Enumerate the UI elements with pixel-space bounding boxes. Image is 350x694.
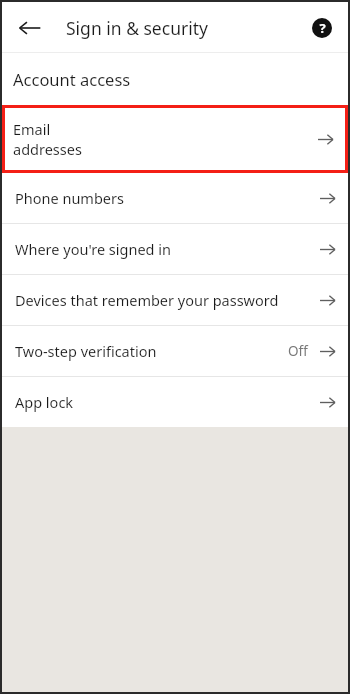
staticText: Off xyxy=(288,342,308,360)
staticText: ? xyxy=(319,19,326,37)
staticText: Devices that remember your password xyxy=(15,290,319,310)
button[interactable]: Devices that remember your password xyxy=(0,275,350,325)
staticText: Two-step verification xyxy=(15,341,288,361)
button[interactable]: Email xyxy=(2,105,348,173)
button[interactable]: Two-step verification xyxy=(0,326,350,376)
button[interactable]: Back xyxy=(10,8,50,48)
staticText: Account access xyxy=(13,68,131,90)
button[interactable]: Where you're signed in xyxy=(0,224,350,274)
button[interactable]: App lock xyxy=(0,377,350,427)
button[interactable]: Help xyxy=(302,8,342,48)
button[interactable]: Phone numbers xyxy=(0,173,350,223)
staticText: Phone numbers xyxy=(15,188,319,208)
staticText: Sign in & security xyxy=(66,16,208,40)
staticText: addresses xyxy=(13,139,82,159)
staticText: Email xyxy=(13,119,51,139)
staticText: Where you're signed in xyxy=(15,239,319,259)
staticText: App lock xyxy=(15,392,319,412)
